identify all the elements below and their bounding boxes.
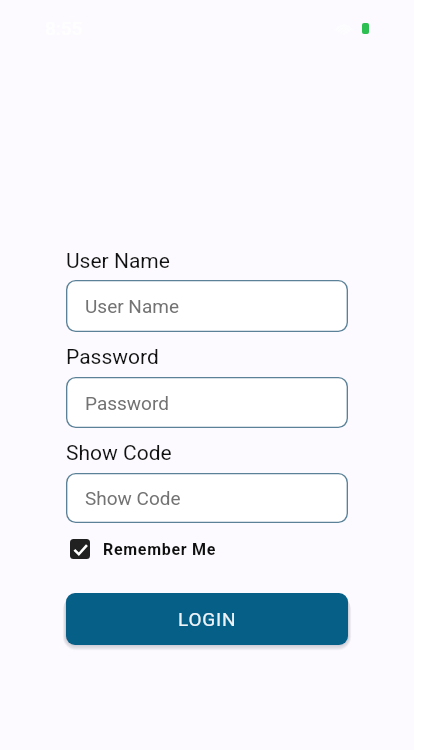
staticText: Show Code (85, 487, 181, 509)
staticText: LOGIN (178, 608, 237, 630)
staticText: Remember Me (103, 540, 217, 559)
button[interactable]: User Name (66, 280, 348, 332)
staticText: User Name (85, 295, 179, 317)
staticText: Password (85, 392, 169, 414)
button[interactable]: LOGIN (66, 593, 348, 645)
button[interactable]: Show Code (66, 473, 348, 523)
staticText: Password (66, 345, 159, 370)
staticText: Show Code (66, 441, 172, 466)
other: Battery (362, 23, 369, 34)
staticText: User Name (66, 249, 170, 274)
button[interactable]: Password (66, 377, 348, 428)
button[interactable]: Remember Me (70, 539, 217, 559)
